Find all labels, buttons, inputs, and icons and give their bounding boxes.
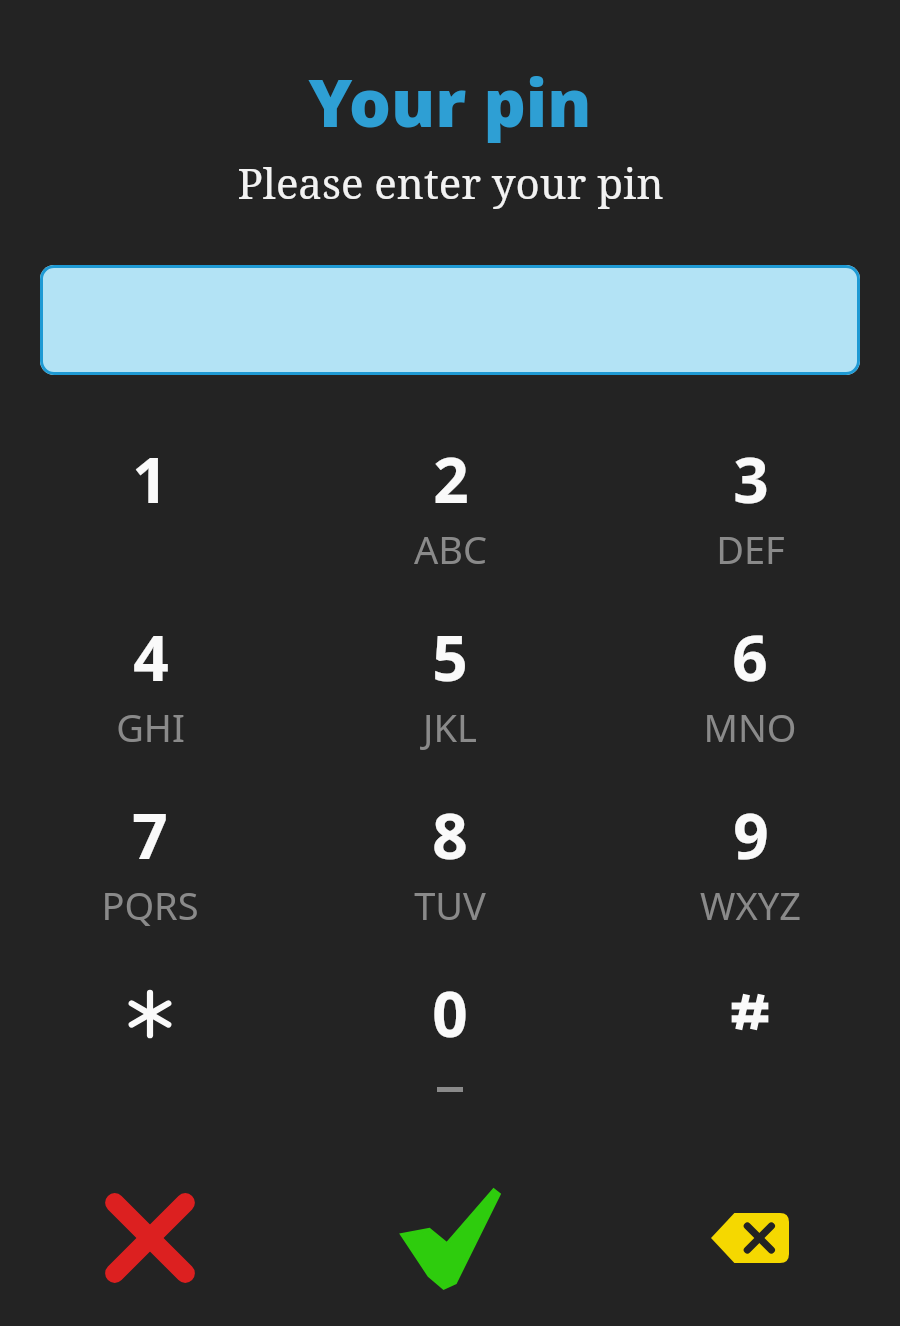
staticText: 6 [732,615,768,699]
staticText: WXYZ [700,879,801,931]
staticText: 8 [432,793,468,877]
button[interactable]: 1 [0,437,300,615]
staticText: TUV [414,879,486,931]
button[interactable]: Star [0,971,300,1151]
staticText: Please enter your pin [237,154,664,211]
button[interactable]: Cancel [0,1173,300,1303]
staticText: JKL [423,701,477,753]
staticText: DEF [716,523,785,575]
button[interactable]: 3 [600,437,900,615]
staticText: 3 [733,437,769,521]
staticText: 5 [432,615,468,699]
button[interactable]: 5 [300,615,600,793]
staticText: 2 [433,437,469,521]
button[interactable]: 4 [0,615,300,793]
staticText: MNO [703,701,797,753]
button[interactable] [40,265,860,375]
staticText: 4 [133,615,169,699]
button[interactable]: 7 [0,793,300,971]
button[interactable]: Backspace [600,1173,900,1303]
button[interactable]: 9 [600,793,900,971]
button[interactable]: 0 [300,971,600,1151]
button[interactable]: 2 [300,437,600,615]
staticText: 0 [432,971,468,1055]
staticText: 9 [733,793,769,877]
staticText: Your pin [308,56,592,146]
staticText: PQRS [101,879,199,931]
staticText: 7 [132,793,168,877]
button[interactable]: 6 [600,615,900,793]
staticText: ABC [414,523,487,575]
staticText: GHI [116,701,185,753]
button[interactable]: 8 [300,793,600,971]
button[interactable]: Confirm [300,1173,600,1303]
staticText: 1 [132,437,168,521]
button[interactable]: Pound [600,971,900,1151]
